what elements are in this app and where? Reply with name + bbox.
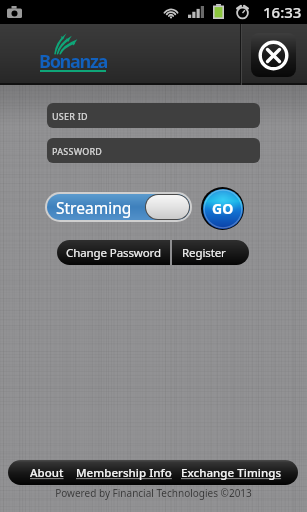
staticText: Streaming bbox=[56, 197, 132, 218]
staticText: USER ID bbox=[52, 110, 88, 122]
button[interactable]: Membership Info bbox=[74, 460, 174, 485]
staticText: About bbox=[30, 465, 64, 481]
button[interactable]: USER ID bbox=[47, 103, 260, 128]
button[interactable]: Streaming bbox=[45, 192, 192, 222]
staticText: 16:33 bbox=[263, 2, 302, 22]
staticText: Exchange Timings bbox=[181, 465, 282, 481]
button[interactable]: PASSWORD bbox=[47, 138, 260, 163]
button[interactable]: GO bbox=[201, 187, 244, 230]
button[interactable]: Register bbox=[172, 240, 249, 265]
staticText: Bonanza bbox=[39, 49, 107, 74]
button[interactable]: Exchange Timings bbox=[174, 460, 288, 485]
staticText: GO bbox=[212, 199, 234, 218]
staticText: Membership Info bbox=[76, 465, 172, 481]
button[interactable]: Change Password bbox=[57, 240, 170, 265]
staticText: Powered by Financial Technologies ©2013 bbox=[0, 486, 307, 500]
button[interactable]: Close bbox=[251, 33, 296, 77]
staticText: Register bbox=[182, 245, 226, 261]
staticText: PASSWORD bbox=[52, 145, 103, 157]
button[interactable]: About bbox=[16, 460, 78, 485]
staticText: Change Password bbox=[66, 245, 161, 261]
